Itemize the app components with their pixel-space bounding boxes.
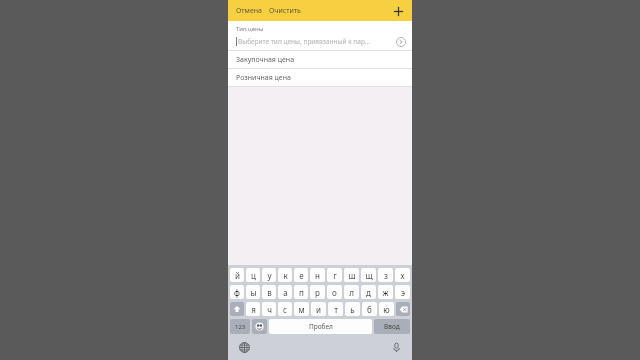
staticText: т xyxy=(334,304,338,315)
staticText: ю xyxy=(383,304,390,315)
staticText: у xyxy=(267,270,272,281)
staticText: ш xyxy=(348,270,356,281)
staticText: Выберите тип цены, привязанный к пар... xyxy=(238,37,391,46)
staticText: Закупочная цена xyxy=(236,55,295,65)
button[interactable]: ю xyxy=(379,302,394,316)
staticText: я xyxy=(251,304,256,315)
button[interactable]: Голосовой ввод xyxy=(388,339,404,355)
staticText: Пробел xyxy=(309,322,333,331)
button[interactable]: х xyxy=(395,268,410,282)
button[interactable]: я xyxy=(246,302,260,316)
staticText: ц xyxy=(251,270,256,281)
staticText: г xyxy=(333,270,337,281)
button[interactable]: Эмодзи xyxy=(252,319,267,334)
button[interactable]: е xyxy=(294,268,308,282)
staticText: ч xyxy=(267,304,272,315)
staticText: о xyxy=(332,287,337,298)
staticText: Очистить xyxy=(269,6,301,16)
button[interactable]: г xyxy=(327,268,342,282)
staticText: м xyxy=(298,304,305,315)
staticText: Отмена xyxy=(236,6,263,16)
staticText: Розничная цена xyxy=(236,73,291,83)
button[interactable]: м xyxy=(294,302,309,316)
button[interactable]: в xyxy=(262,285,276,299)
button[interactable]: л xyxy=(344,285,359,299)
button[interactable]: ч xyxy=(262,302,276,316)
button[interactable]: й xyxy=(230,268,244,282)
button[interactable]: Добавить xyxy=(390,3,406,19)
staticText: р xyxy=(315,287,320,298)
staticText: щ xyxy=(365,270,373,281)
button[interactable]: н xyxy=(310,268,325,282)
staticText: л xyxy=(349,287,354,298)
staticText: ф xyxy=(234,287,240,298)
button[interactable]: Тип цены xyxy=(228,21,412,50)
staticText: н xyxy=(315,270,320,281)
button[interactable]: б xyxy=(362,302,377,316)
staticText: б xyxy=(367,304,372,315)
staticText: э xyxy=(401,287,405,298)
staticText: в xyxy=(267,287,272,298)
staticText: а xyxy=(283,287,288,298)
button[interactable]: Пробел xyxy=(269,319,372,334)
button[interactable]: Закупочная цена xyxy=(228,51,412,68)
staticText: ь xyxy=(350,304,355,315)
staticText: п xyxy=(299,287,304,298)
staticText: д xyxy=(366,287,371,298)
staticText: х xyxy=(400,270,405,281)
button[interactable]: п xyxy=(294,285,308,299)
staticText: к xyxy=(283,270,288,281)
button[interactable]: Shift xyxy=(230,302,244,316)
button[interactable]: Сменить язык xyxy=(236,339,252,355)
staticText: Тип цены xyxy=(236,25,264,33)
staticText: з xyxy=(384,270,388,281)
button[interactable]: а xyxy=(278,285,292,299)
staticText: с xyxy=(283,304,287,315)
button[interactable]: ш xyxy=(344,268,359,282)
staticText: ж xyxy=(382,287,389,298)
staticText: 123 xyxy=(235,323,246,331)
button[interactable]: т xyxy=(328,302,343,316)
button[interactable]: ж xyxy=(378,285,393,299)
button[interactable]: Отмена xyxy=(235,4,264,18)
button[interactable]: э xyxy=(395,285,410,299)
button[interactable]: к xyxy=(278,268,292,282)
button[interactable]: ь xyxy=(345,302,360,316)
button[interactable]: с xyxy=(278,302,292,316)
button[interactable]: Очистить xyxy=(268,4,302,18)
button[interactable]: у xyxy=(262,268,276,282)
staticText: Ввод xyxy=(384,322,400,331)
button[interactable]: Розничная цена xyxy=(228,69,412,86)
button[interactable]: д xyxy=(361,285,376,299)
button[interactable]: и xyxy=(311,302,326,316)
button[interactable]: Backspace xyxy=(396,302,410,316)
button[interactable]: щ xyxy=(361,268,376,282)
button[interactable]: Ввод xyxy=(374,319,410,334)
button[interactable]: ы xyxy=(246,285,260,299)
button[interactable]: ц xyxy=(246,268,260,282)
button[interactable]: 123 xyxy=(230,319,250,334)
button[interactable]: ф xyxy=(230,285,244,299)
staticText: ы xyxy=(250,287,257,298)
button[interactable]: о xyxy=(327,285,342,299)
button[interactable]: р xyxy=(310,285,325,299)
button[interactable]: Открыть xyxy=(395,36,406,47)
staticText: й xyxy=(235,270,240,281)
staticText: е xyxy=(299,270,304,281)
button[interactable]: з xyxy=(378,268,393,282)
staticText: и xyxy=(316,304,321,315)
